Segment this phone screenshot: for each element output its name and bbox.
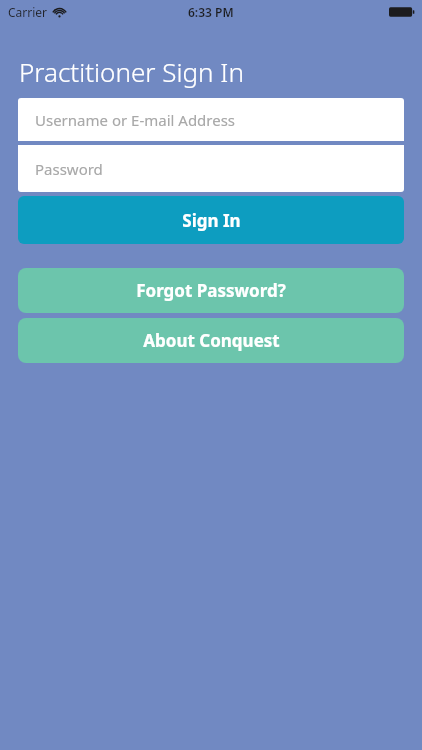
staticText: Forgot Password? [136, 279, 286, 302]
button[interactable]: Sign In [18, 196, 404, 244]
button[interactable]: Forgot Password? [18, 268, 404, 313]
staticText: Sign In [182, 209, 241, 232]
staticText: About Conquest [143, 329, 280, 352]
staticText: 6:33 PM [188, 4, 234, 20]
button[interactable]: About Conquest [18, 318, 404, 363]
staticText: Username or E-mail Address [35, 110, 236, 130]
button[interactable]: Username or E-mail Address [18, 98, 404, 141]
staticText: Password [35, 159, 103, 179]
staticText: Carrier [8, 4, 48, 20]
staticText: Practitioner Sign In [19, 54, 244, 89]
button[interactable]: Password [18, 145, 404, 192]
